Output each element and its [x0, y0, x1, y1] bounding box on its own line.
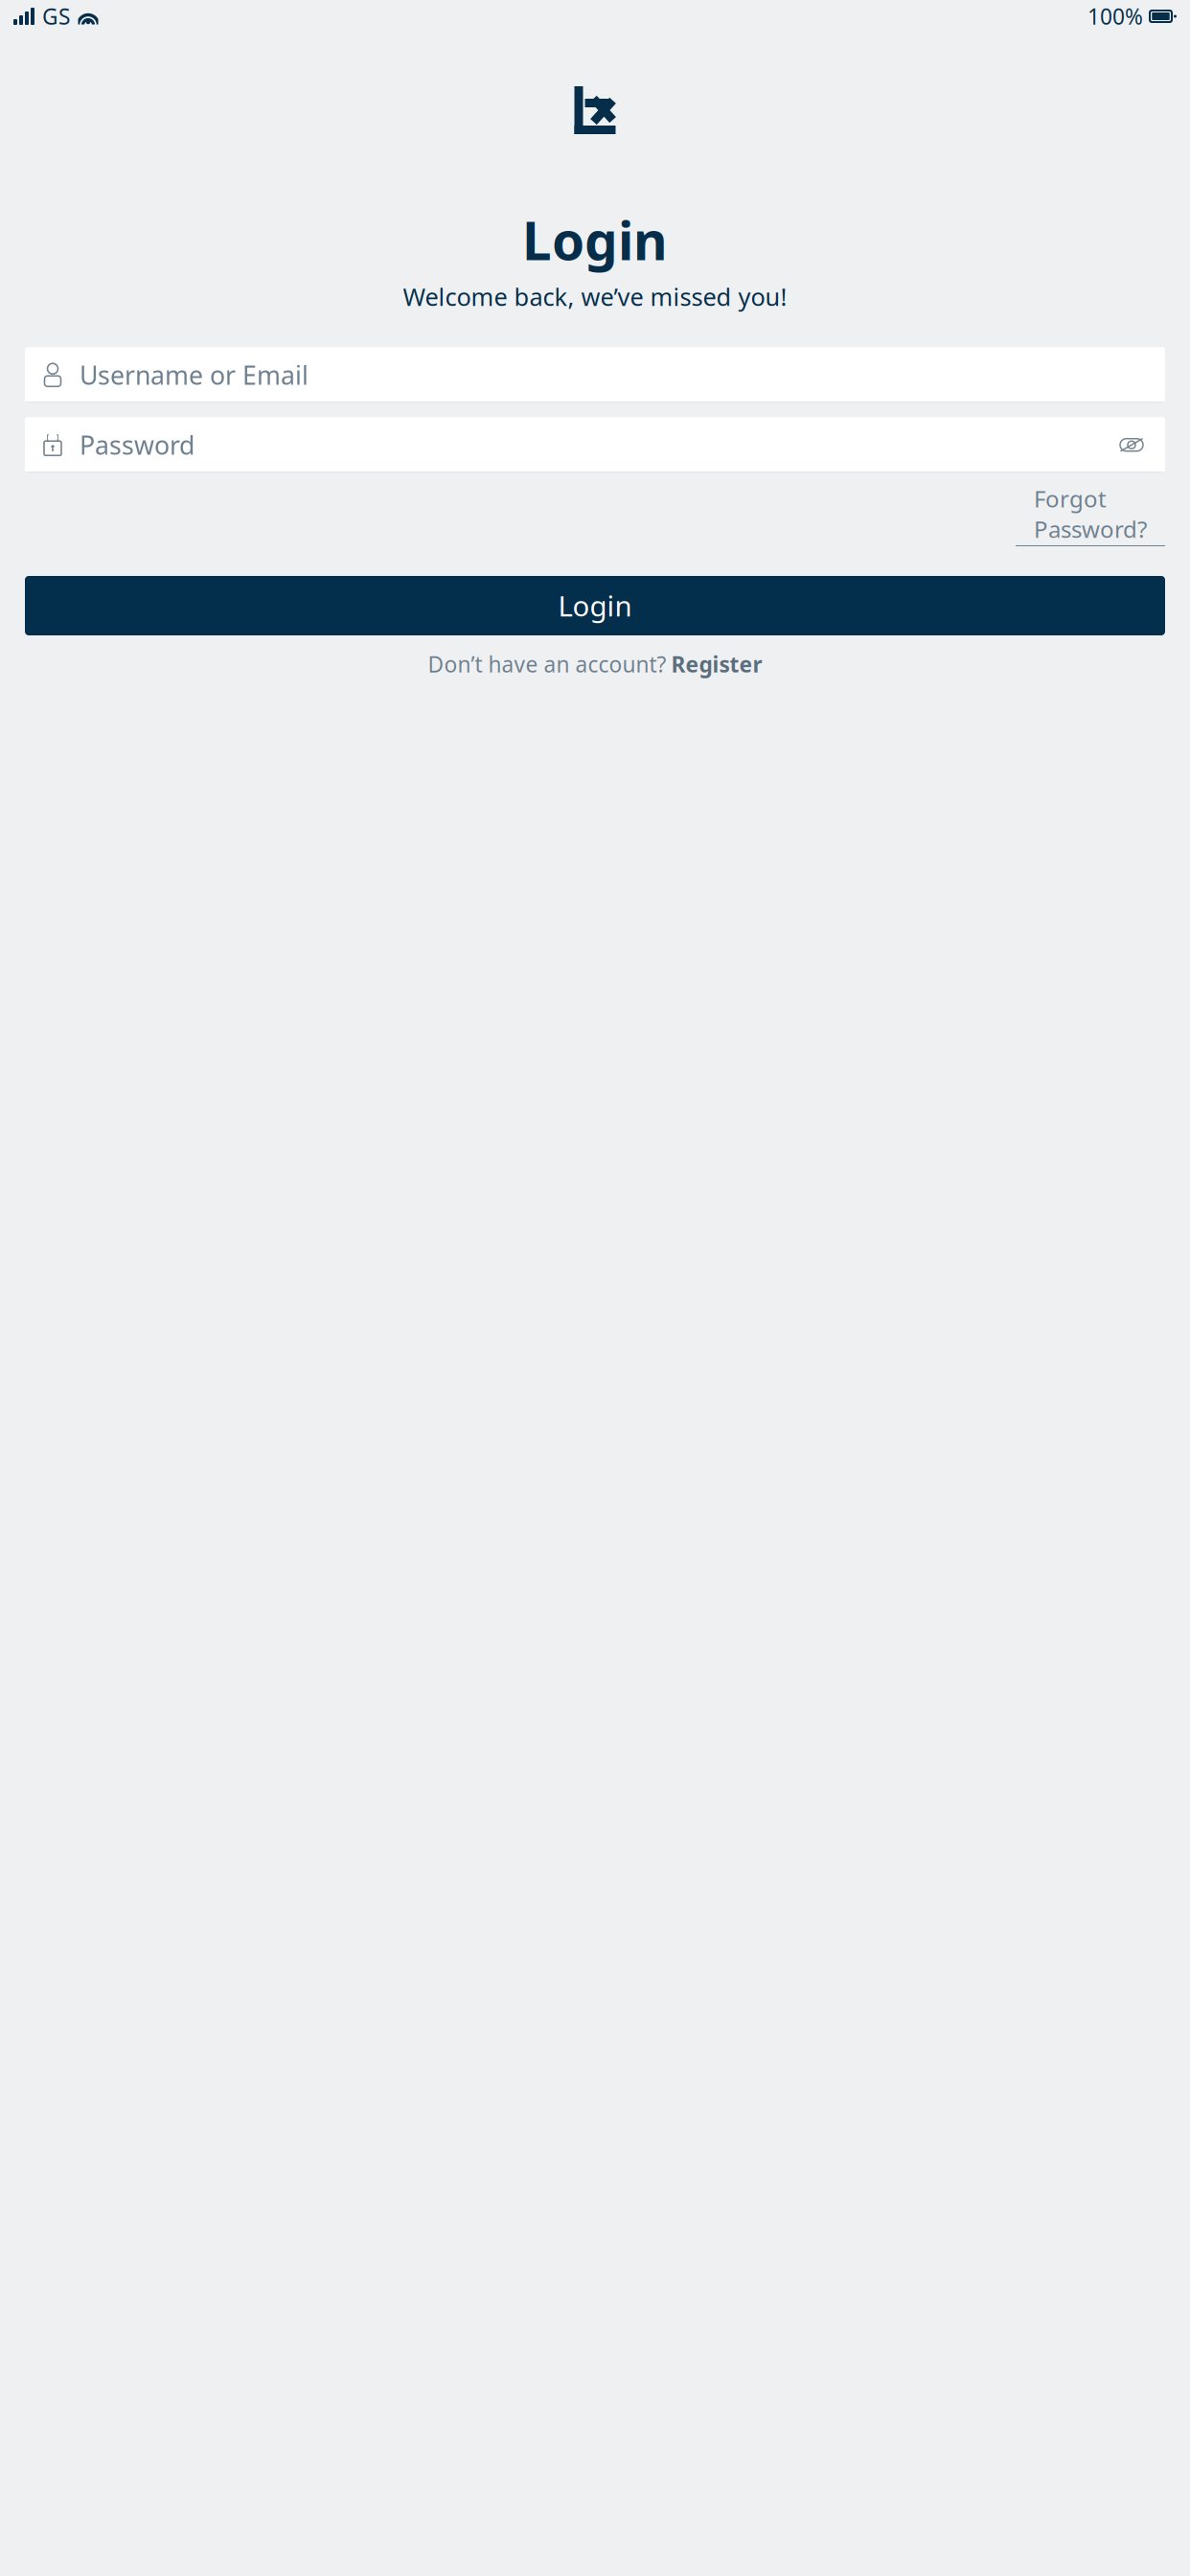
button[interactable]: Don’t have an account? — [428, 650, 762, 679]
staticText: Password — [80, 428, 195, 462]
staticText: Username or Email — [80, 358, 309, 392]
button[interactable]: Login — [25, 576, 1165, 635]
staticText: Login — [522, 205, 668, 275]
button[interactable]: Password — [25, 417, 1165, 473]
staticText: Register — [671, 650, 762, 679]
button[interactable]: Forgot Password? — [1016, 483, 1165, 546]
staticText: 100% — [1087, 2, 1143, 31]
staticText: Login — [558, 587, 632, 624]
staticText: GS — [42, 2, 70, 31]
staticText: Welcome back, we’ve missed you! — [403, 280, 787, 313]
button[interactable]: Username or Email — [25, 347, 1165, 403]
staticText: Don’t have an account? — [428, 650, 666, 679]
staticText: Forgot Password? — [1034, 483, 1147, 544]
